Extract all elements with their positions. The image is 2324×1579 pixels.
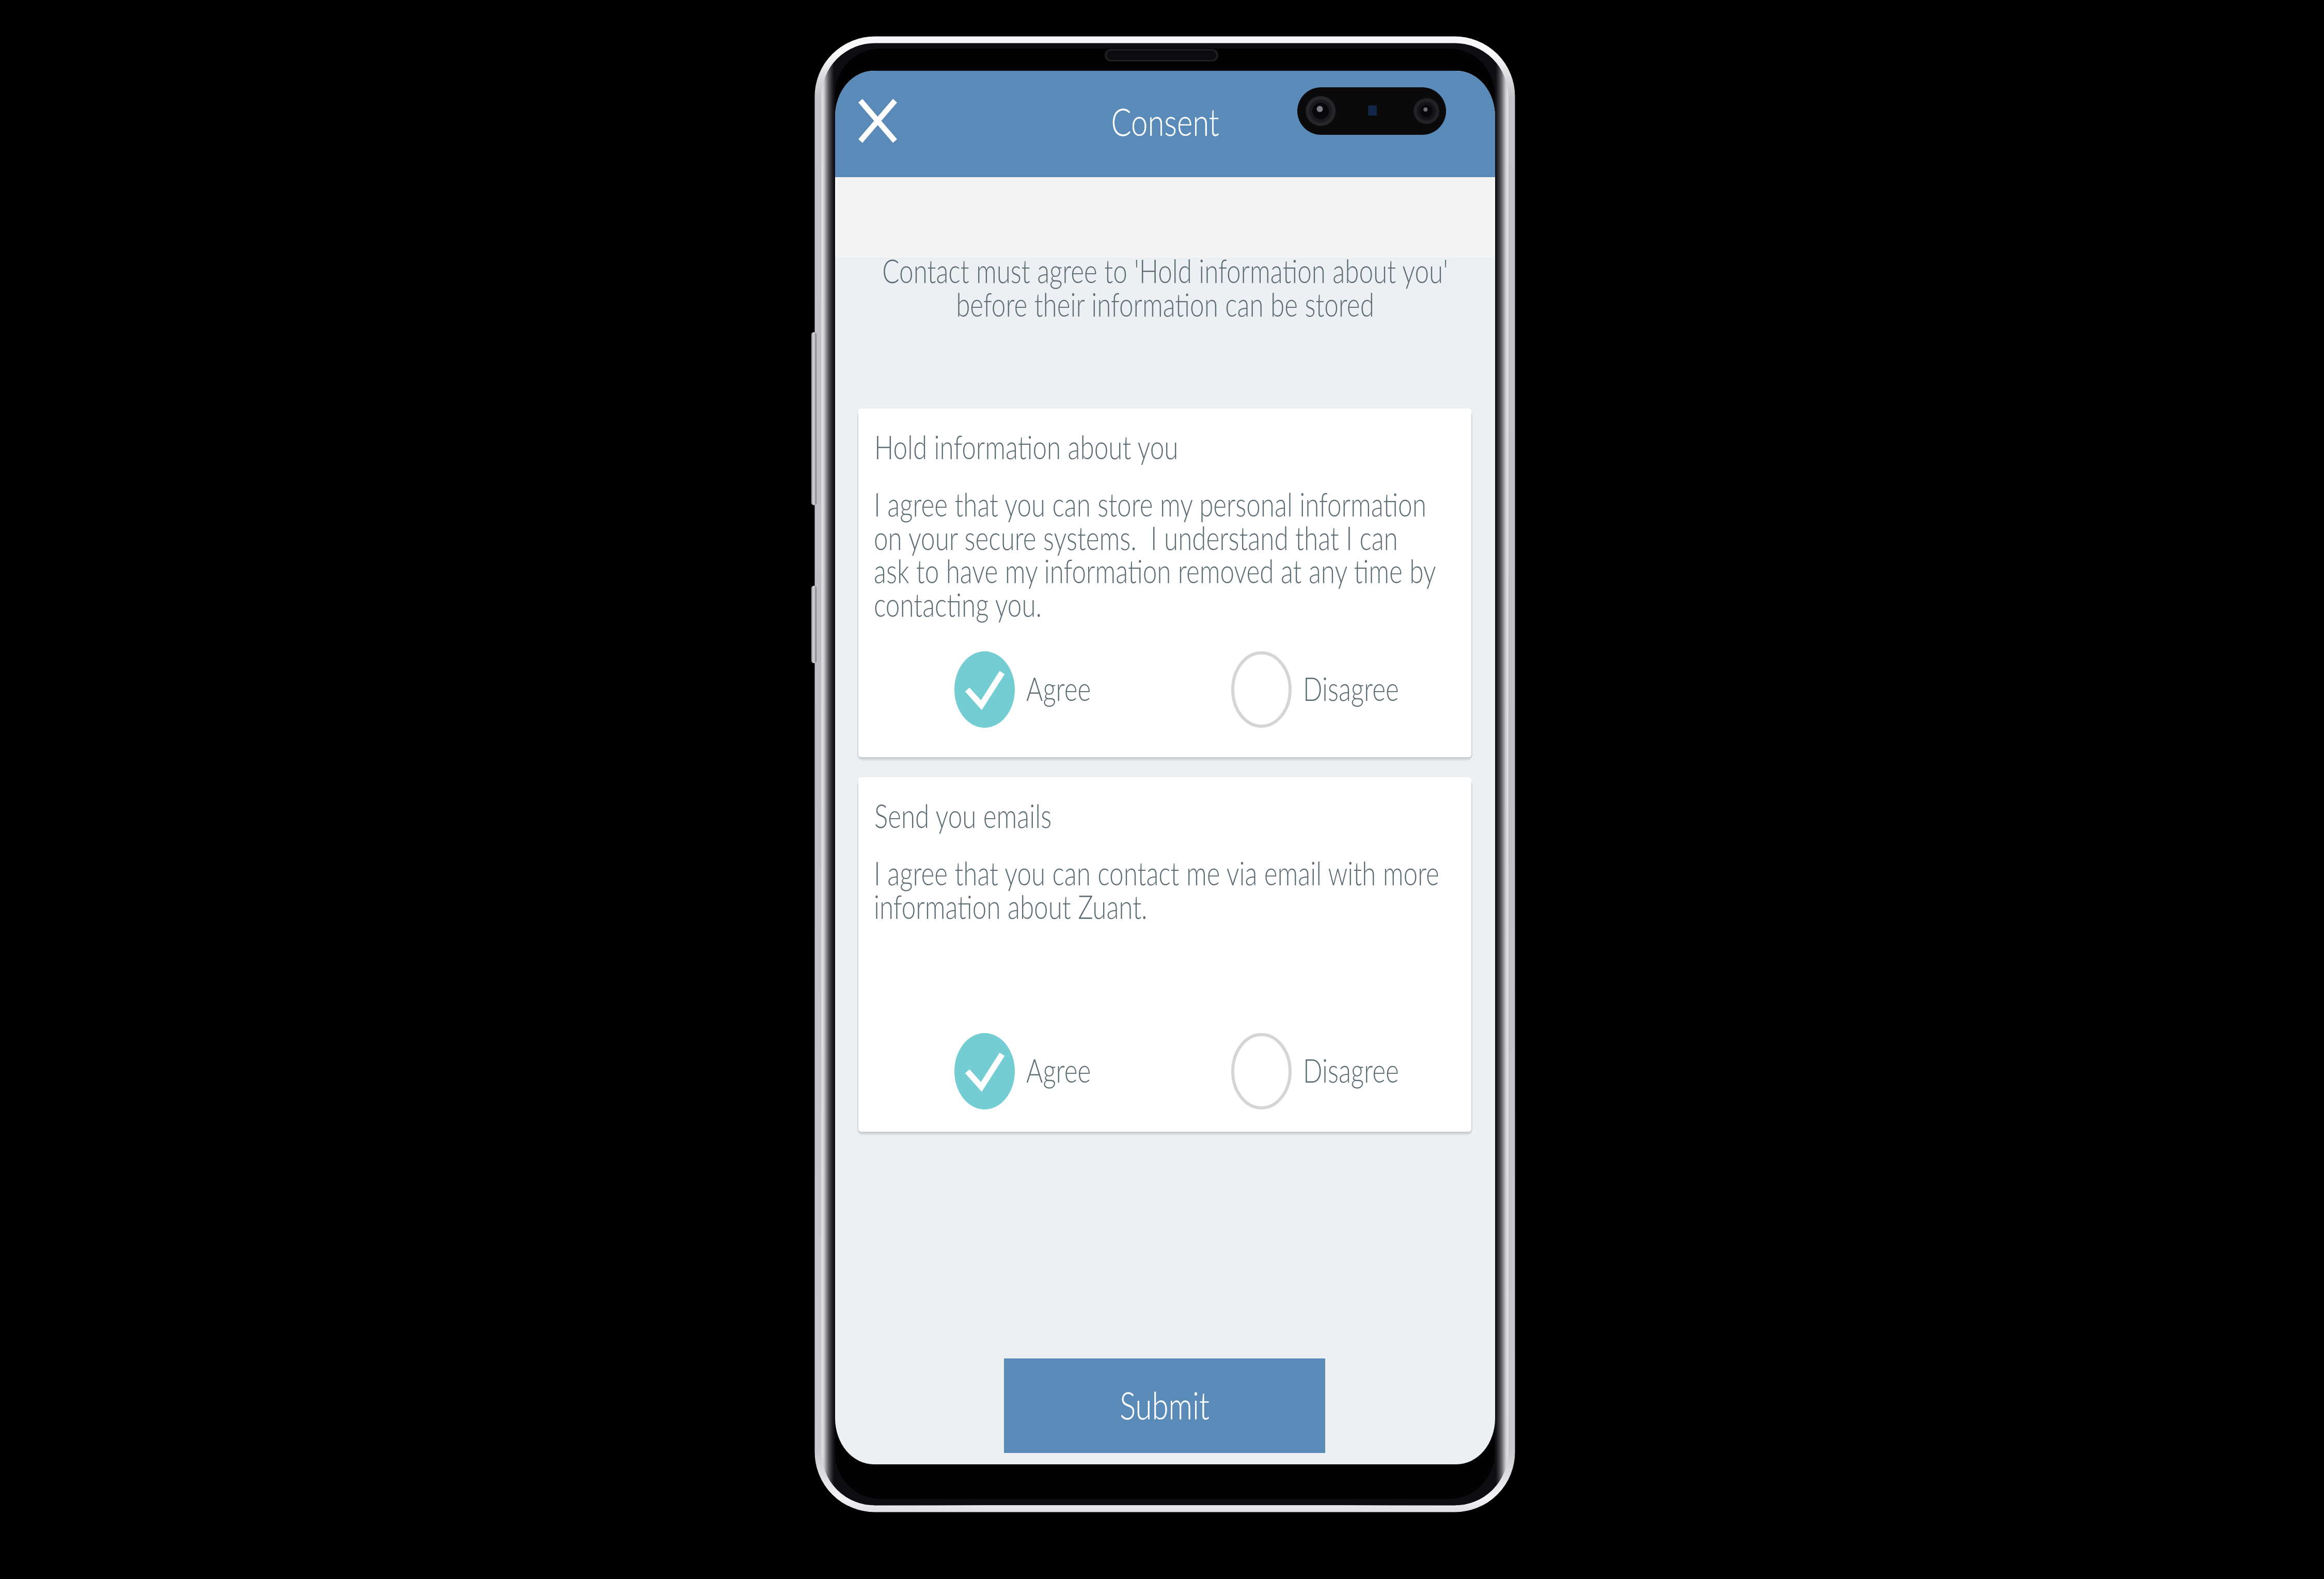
button[interactable]: Hold information about you (858, 409, 1471, 757)
staticText: I agree that you can store my personal i… (874, 484, 1436, 623)
button[interactable]: Close (838, 79, 917, 163)
button[interactable]: Disagree (1231, 1033, 1453, 1109)
staticText: Send you emails (874, 796, 1052, 834)
button[interactable]: Agree (954, 651, 1202, 728)
staticText: Hold information about you (874, 427, 1179, 466)
staticText: Consent (835, 99, 1495, 144)
staticText: Agree (1026, 1051, 1091, 1089)
button[interactable]: Send you emails (858, 777, 1471, 1132)
staticText: Agree (1026, 669, 1091, 707)
staticText: Contact must agree to 'Hold information … (835, 251, 1495, 323)
staticText: I agree that you can contact me via emai… (874, 853, 1439, 925)
staticText: Submit (1004, 1382, 1325, 1428)
staticText: Disagree (1303, 1051, 1399, 1089)
button[interactable]: Agree (954, 1033, 1202, 1109)
staticText: Disagree (1303, 669, 1399, 707)
button[interactable]: Submit (1004, 1358, 1325, 1453)
button[interactable]: Disagree (1231, 651, 1453, 728)
